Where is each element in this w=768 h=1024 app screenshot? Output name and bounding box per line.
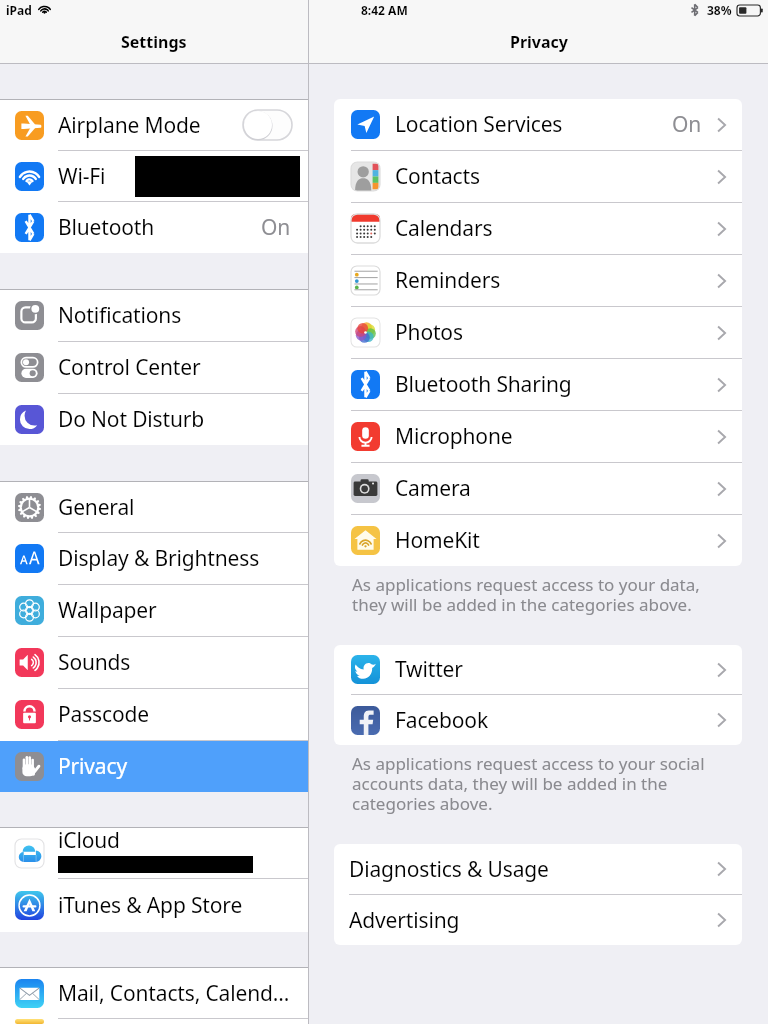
staticText: Calendars bbox=[395, 214, 717, 243]
button[interactable]: Camera bbox=[334, 463, 742, 515]
button[interactable]: Wallpaper bbox=[0, 585, 308, 637]
staticText: Control Center bbox=[58, 353, 308, 382]
staticText: As applications request access to your d… bbox=[352, 573, 700, 616]
staticText: Mail, Contacts, Calend… bbox=[58, 979, 308, 1008]
button[interactable]: Passcode bbox=[0, 689, 308, 741]
button[interactable]: Twitter bbox=[334, 645, 742, 695]
button[interactable]: Sounds bbox=[0, 637, 308, 689]
staticText: Camera bbox=[395, 474, 717, 503]
button[interactable]: Airplane Mode toggle bbox=[243, 110, 292, 140]
button[interactable]: Diagnostics & Usage bbox=[334, 844, 742, 895]
staticText: Twitter bbox=[395, 655, 717, 684]
staticText: Location Services bbox=[395, 110, 672, 139]
staticText: Wallpaper bbox=[58, 596, 308, 625]
staticText: Airplane Mode bbox=[58, 111, 243, 140]
button[interactable]: Facebook bbox=[334, 695, 742, 745]
staticText: Privacy bbox=[510, 31, 568, 53]
button[interactable]: Bluetooth Sharing bbox=[334, 359, 742, 411]
button[interactable]: Notifications bbox=[0, 290, 308, 342]
staticText: Display & Brightness bbox=[58, 544, 308, 573]
staticText: Notifications bbox=[58, 301, 308, 330]
button[interactable]: iCloud bbox=[0, 828, 308, 879]
staticText: As applications request access to your s… bbox=[352, 752, 705, 815]
button[interactable]: Control Center bbox=[0, 342, 308, 394]
button[interactable]: Mail, Contacts, Calend… bbox=[0, 968, 308, 1019]
staticText: Do Not Disturb bbox=[58, 405, 308, 434]
staticText: Passcode bbox=[58, 700, 308, 729]
staticText: On bbox=[261, 213, 291, 242]
staticText: Reminders bbox=[395, 266, 717, 295]
staticText: Facebook bbox=[395, 706, 717, 735]
button[interactable]: Calendars bbox=[334, 203, 742, 255]
staticText: Diagnostics & Usage bbox=[349, 855, 717, 884]
staticText: Wi-Fi bbox=[58, 162, 135, 191]
staticText: Photos bbox=[395, 318, 717, 347]
button[interactable]: Reminders bbox=[334, 255, 742, 307]
button[interactable]: Advertising bbox=[334, 895, 742, 945]
button[interactable]: Airplane Mode bbox=[0, 100, 308, 151]
staticText: 38% bbox=[707, 2, 732, 18]
staticText: Contacts bbox=[395, 162, 717, 191]
button[interactable]: Photos bbox=[334, 307, 742, 359]
staticText: Privacy bbox=[58, 752, 308, 781]
button[interactable]: General bbox=[0, 482, 308, 533]
button[interactable]: HomeKit bbox=[334, 515, 742, 566]
staticText: Sounds bbox=[58, 648, 308, 677]
button[interactable]: Microphone bbox=[334, 411, 742, 463]
staticText: HomeKit bbox=[395, 526, 717, 555]
staticText: iCloud bbox=[58, 826, 120, 855]
button[interactable]: iTunes & App Store bbox=[0, 879, 308, 932]
button[interactable]: Notes bbox=[0, 1019, 308, 1024]
button[interactable]: Contacts bbox=[334, 151, 742, 203]
button[interactable]: Bluetooth bbox=[0, 202, 308, 253]
staticText: Microphone bbox=[395, 422, 717, 451]
staticText: Bluetooth bbox=[58, 213, 261, 242]
staticText: Settings bbox=[121, 31, 187, 53]
button[interactable]: Do Not Disturb bbox=[0, 394, 308, 445]
staticText: iTunes & App Store bbox=[58, 891, 308, 920]
button[interactable]: Wi-Fi bbox=[0, 151, 308, 202]
staticText: 8:42 AM bbox=[361, 2, 408, 18]
staticText: On bbox=[672, 110, 702, 139]
button[interactable]: Privacy bbox=[0, 741, 308, 792]
staticText: Bluetooth Sharing bbox=[395, 370, 717, 399]
staticText: iPad bbox=[6, 2, 32, 18]
staticText: Advertising bbox=[349, 906, 717, 935]
button[interactable]: Location Services bbox=[334, 99, 742, 151]
staticText: General bbox=[58, 493, 308, 522]
button[interactable]: Display & Brightness bbox=[0, 533, 308, 585]
